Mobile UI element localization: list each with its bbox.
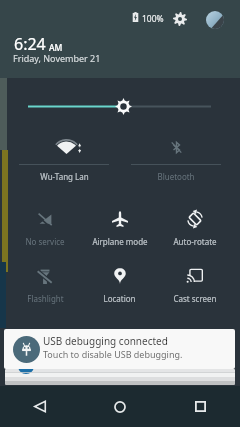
button[interactable]: Location	[82, 263, 157, 309]
button[interactable]: USB debugging connected	[4, 329, 235, 369]
staticText: 6:24	[14, 33, 46, 55]
staticText: No service	[25, 236, 65, 247]
staticText: Airplane mode	[92, 236, 148, 247]
staticText: Touch to disable USB debugging.	[43, 348, 183, 360]
button[interactable]: Bluetooth	[120, 130, 232, 184]
button[interactable]: Notification	[5, 369, 235, 385]
staticText: 100%	[142, 13, 164, 25]
staticText: Location	[103, 293, 136, 304]
staticText: Wu-Tang Lan	[40, 171, 89, 182]
staticText: Cast screen	[173, 293, 217, 304]
staticText: Auto-rotate	[173, 236, 217, 247]
button[interactable]: Back	[0, 386, 80, 427]
button[interactable]: User profile	[206, 11, 224, 29]
staticText: Friday, November 21	[13, 52, 101, 64]
button[interactable]: No service	[8, 206, 82, 252]
button[interactable]: Brightness	[0, 94, 240, 120]
button[interactable]: Airplane mode	[82, 206, 157, 252]
button[interactable]: Settings	[170, 9, 190, 29]
button[interactable]: Auto-rotate	[157, 206, 232, 252]
button[interactable]: Recent apps	[160, 386, 240, 427]
button[interactable]: Cast screen	[157, 263, 232, 309]
staticText: AM	[49, 42, 63, 54]
button[interactable]: Home	[80, 386, 160, 427]
staticText: Flashlight	[27, 293, 64, 304]
staticText: USB debugging connected	[43, 334, 168, 348]
button[interactable]: Flashlight	[8, 263, 82, 309]
staticText: Bluetooth	[157, 171, 195, 182]
button[interactable]: Wu-Tang Lan	[8, 130, 120, 184]
